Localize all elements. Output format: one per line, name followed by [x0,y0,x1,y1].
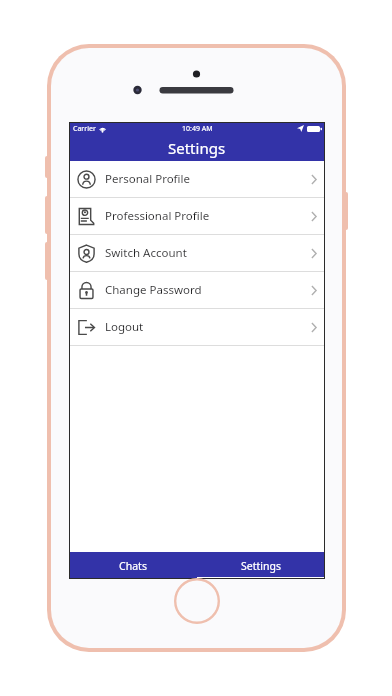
staticText: Change Password [105,282,202,298]
staticText: Professional Profile [105,208,210,224]
button[interactable]: Logout [69,309,325,345]
staticText: 10:49 AM [182,124,213,134]
button[interactable]: Professional Profile [69,198,325,234]
button[interactable]: Chats [69,552,197,579]
staticText: Personal Profile [105,171,190,187]
button[interactable]: Change Password [69,272,325,308]
staticText: Chats [119,559,147,573]
button[interactable]: Settings [197,552,325,579]
staticText: Logout [105,319,144,335]
staticText: Settings [168,138,226,158]
other: Home [174,578,220,624]
button[interactable]: Personal Profile [69,161,325,197]
staticText: Carrier [73,124,96,134]
staticText: Switch Account [105,245,187,261]
staticText: Settings [241,559,281,573]
button[interactable]: Switch Account [69,235,325,271]
